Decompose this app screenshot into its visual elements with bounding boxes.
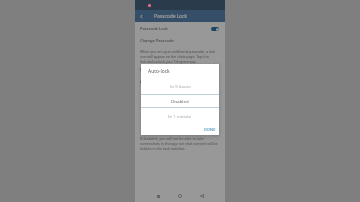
- staticText: DONE: [204, 127, 216, 132]
- button[interactable]: Unlock with fingerprint: [135, 64, 225, 76]
- button[interactable]: DONE: [202, 126, 218, 133]
- button[interactable]: Back: [197, 191, 207, 201]
- staticText: Passcode Lock: [140, 26, 168, 32]
- staticText: Passcode Lock: [154, 13, 188, 20]
- button[interactable]: Auto-Lock: [135, 76, 225, 88]
- button[interactable]: In 5 hours: [141, 78, 219, 94]
- button[interactable]: Disabled: [141, 95, 219, 107]
- button[interactable]: Home: [175, 191, 185, 201]
- staticText: Auto-Lock: [140, 79, 160, 85]
- staticText: When you set up an additional passcode, …: [140, 49, 216, 64]
- staticText: Unlock with fingerprint: [140, 67, 185, 73]
- staticText: If disabled, you will not be able to tak…: [140, 136, 220, 151]
- staticText: Auto-lock: [148, 68, 170, 75]
- button[interactable]: Passcode Lock: [135, 22, 225, 35]
- staticText: Change Passcode: [140, 38, 174, 44]
- button[interactable]: Change Passcode: [135, 35, 225, 47]
- staticText: In 5 hours: [170, 83, 191, 89]
- staticText: In 1 minute: [168, 113, 192, 119]
- button[interactable]: Recent apps: [153, 191, 163, 201]
- staticText: Disabled: [171, 98, 189, 104]
- button[interactable]: Back: [135, 10, 148, 22]
- button[interactable]: In 1 minute: [141, 108, 219, 124]
